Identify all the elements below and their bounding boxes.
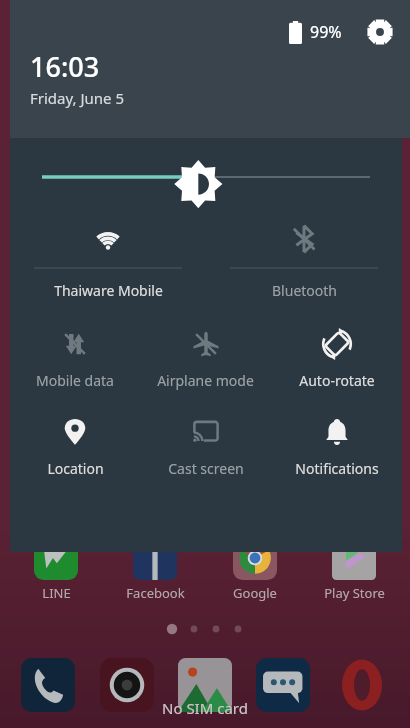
button[interactable]: Facebook bbox=[111, 536, 199, 602]
button[interactable]: Settings bbox=[364, 16, 396, 48]
button[interactable]: Messages bbox=[253, 655, 313, 715]
staticText: Play Store bbox=[324, 584, 385, 602]
button[interactable]: Google bbox=[211, 536, 299, 602]
staticText: LINE bbox=[42, 584, 71, 602]
button[interactable]: Airplane mode bbox=[140, 328, 271, 390]
staticText: Notifications bbox=[295, 459, 379, 478]
button[interactable]: Cast screen bbox=[140, 416, 271, 478]
button[interactable]: Location bbox=[10, 416, 140, 478]
button[interactable]: Camera bbox=[97, 655, 157, 715]
button[interactable]: Gallery bbox=[175, 655, 235, 715]
button[interactable]: Bluetooth bbox=[206, 222, 402, 300]
staticText: No SIM card bbox=[162, 698, 248, 718]
staticText: Friday, June 5 bbox=[30, 88, 125, 108]
staticText: Bluetooth bbox=[272, 281, 337, 300]
staticText: Location bbox=[47, 459, 104, 478]
button[interactable]: LINE bbox=[12, 536, 100, 602]
other: Battery 99 percent bbox=[289, 21, 302, 44]
button[interactable]: Opera browser bbox=[332, 655, 392, 715]
staticText: Cast screen bbox=[168, 459, 244, 478]
staticText: Google bbox=[233, 584, 277, 602]
button[interactable]: Notifications bbox=[271, 416, 402, 478]
staticText: Auto-rotate bbox=[299, 371, 375, 390]
button[interactable]: Thaiware Mobile bbox=[10, 222, 206, 300]
button[interactable]: Auto-rotate bbox=[271, 328, 402, 390]
staticText: Facebook bbox=[126, 584, 185, 602]
button[interactable]: Phone bbox=[18, 655, 78, 715]
staticText: 16:03 bbox=[30, 48, 100, 85]
staticText: Mobile data bbox=[36, 371, 114, 390]
button[interactable]: Brightness bbox=[42, 160, 370, 194]
button[interactable]: Mobile data bbox=[10, 328, 140, 390]
staticText: Thaiware Mobile bbox=[54, 281, 163, 300]
button[interactable]: Play Store bbox=[310, 536, 398, 602]
staticText: 99% bbox=[310, 21, 342, 43]
staticText: Airplane mode bbox=[157, 371, 254, 390]
